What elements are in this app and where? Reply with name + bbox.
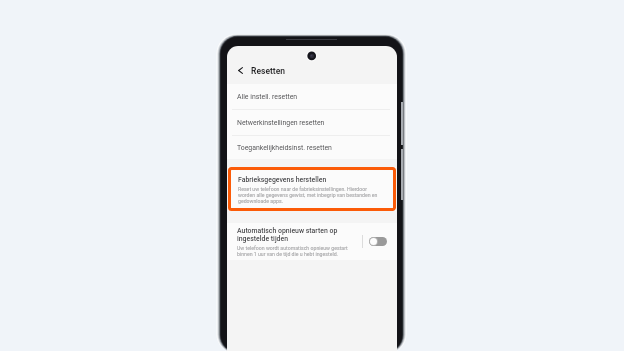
button[interactable]: Netwerkinstellingen resetten [227,110,397,135]
staticText: Automatisch opnieuw starten op ingesteld… [237,227,357,243]
button[interactable]: Terug [233,64,247,78]
button[interactable]: Alle instell. resetten [227,84,397,109]
button[interactable]: Automatisch opnieuw starten op ingesteld… [227,223,397,260]
staticText: Alle instell. resetten [237,93,298,101]
staticText: Resetten [251,66,286,76]
staticText: Reset uw telefoon naar de fabrieksinstel… [238,186,384,204]
button[interactable]: Automatisch opnieuw starten aan/uit [369,237,387,246]
staticText: Netwerkinstellingen resetten [237,119,325,127]
staticText: Uw telefoon wordt automatisch opnieuw ge… [237,245,357,257]
staticText: Toegankelijkheidsinst. resetten [237,144,332,152]
button[interactable]: Fabrieksgegevens herstellen [228,167,396,211]
staticText: Fabrieksgegevens herstellen [238,176,327,184]
button[interactable]: Toegankelijkheidsinst. resetten [227,136,397,159]
